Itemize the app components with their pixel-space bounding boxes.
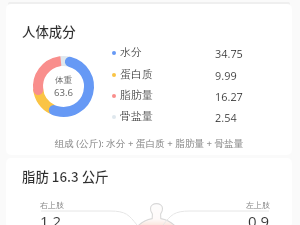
staticText: 2.54 xyxy=(215,110,237,125)
staticText: 人体成分 xyxy=(22,21,76,40)
staticText: 水分 xyxy=(120,46,142,60)
button[interactable]: 右上肢 xyxy=(40,200,120,225)
button[interactable]: 骨盐量 xyxy=(106,108,256,126)
staticText: 右上肢 xyxy=(40,200,64,210)
staticText: 左上肢 xyxy=(246,200,270,210)
staticText: 骨盐量 xyxy=(120,110,153,124)
staticText: 1.2 xyxy=(40,211,62,225)
staticText: 脂肪 16.3 公斤 xyxy=(22,166,109,185)
button[interactable]: 水分 xyxy=(106,44,256,62)
staticText: 63.6 xyxy=(54,86,74,99)
staticText: 蛋白质 xyxy=(120,68,153,82)
button[interactable]: 左上肢 xyxy=(190,200,270,225)
staticText: 0.9 xyxy=(248,211,270,225)
staticText: 34.75 xyxy=(215,46,243,61)
staticText: 9.99 xyxy=(215,68,237,83)
staticText: 16.27 xyxy=(215,89,243,104)
staticText: 体重 xyxy=(55,75,73,86)
staticText: 脂肪量 xyxy=(120,89,153,103)
button[interactable]: 蛋白质 xyxy=(106,66,256,84)
button[interactable]: 脂肪量 xyxy=(106,87,256,105)
staticText: 组成 (公斤): 水分 + 蛋白质 + 脂肪量 + 骨盐量 xyxy=(6,137,292,150)
